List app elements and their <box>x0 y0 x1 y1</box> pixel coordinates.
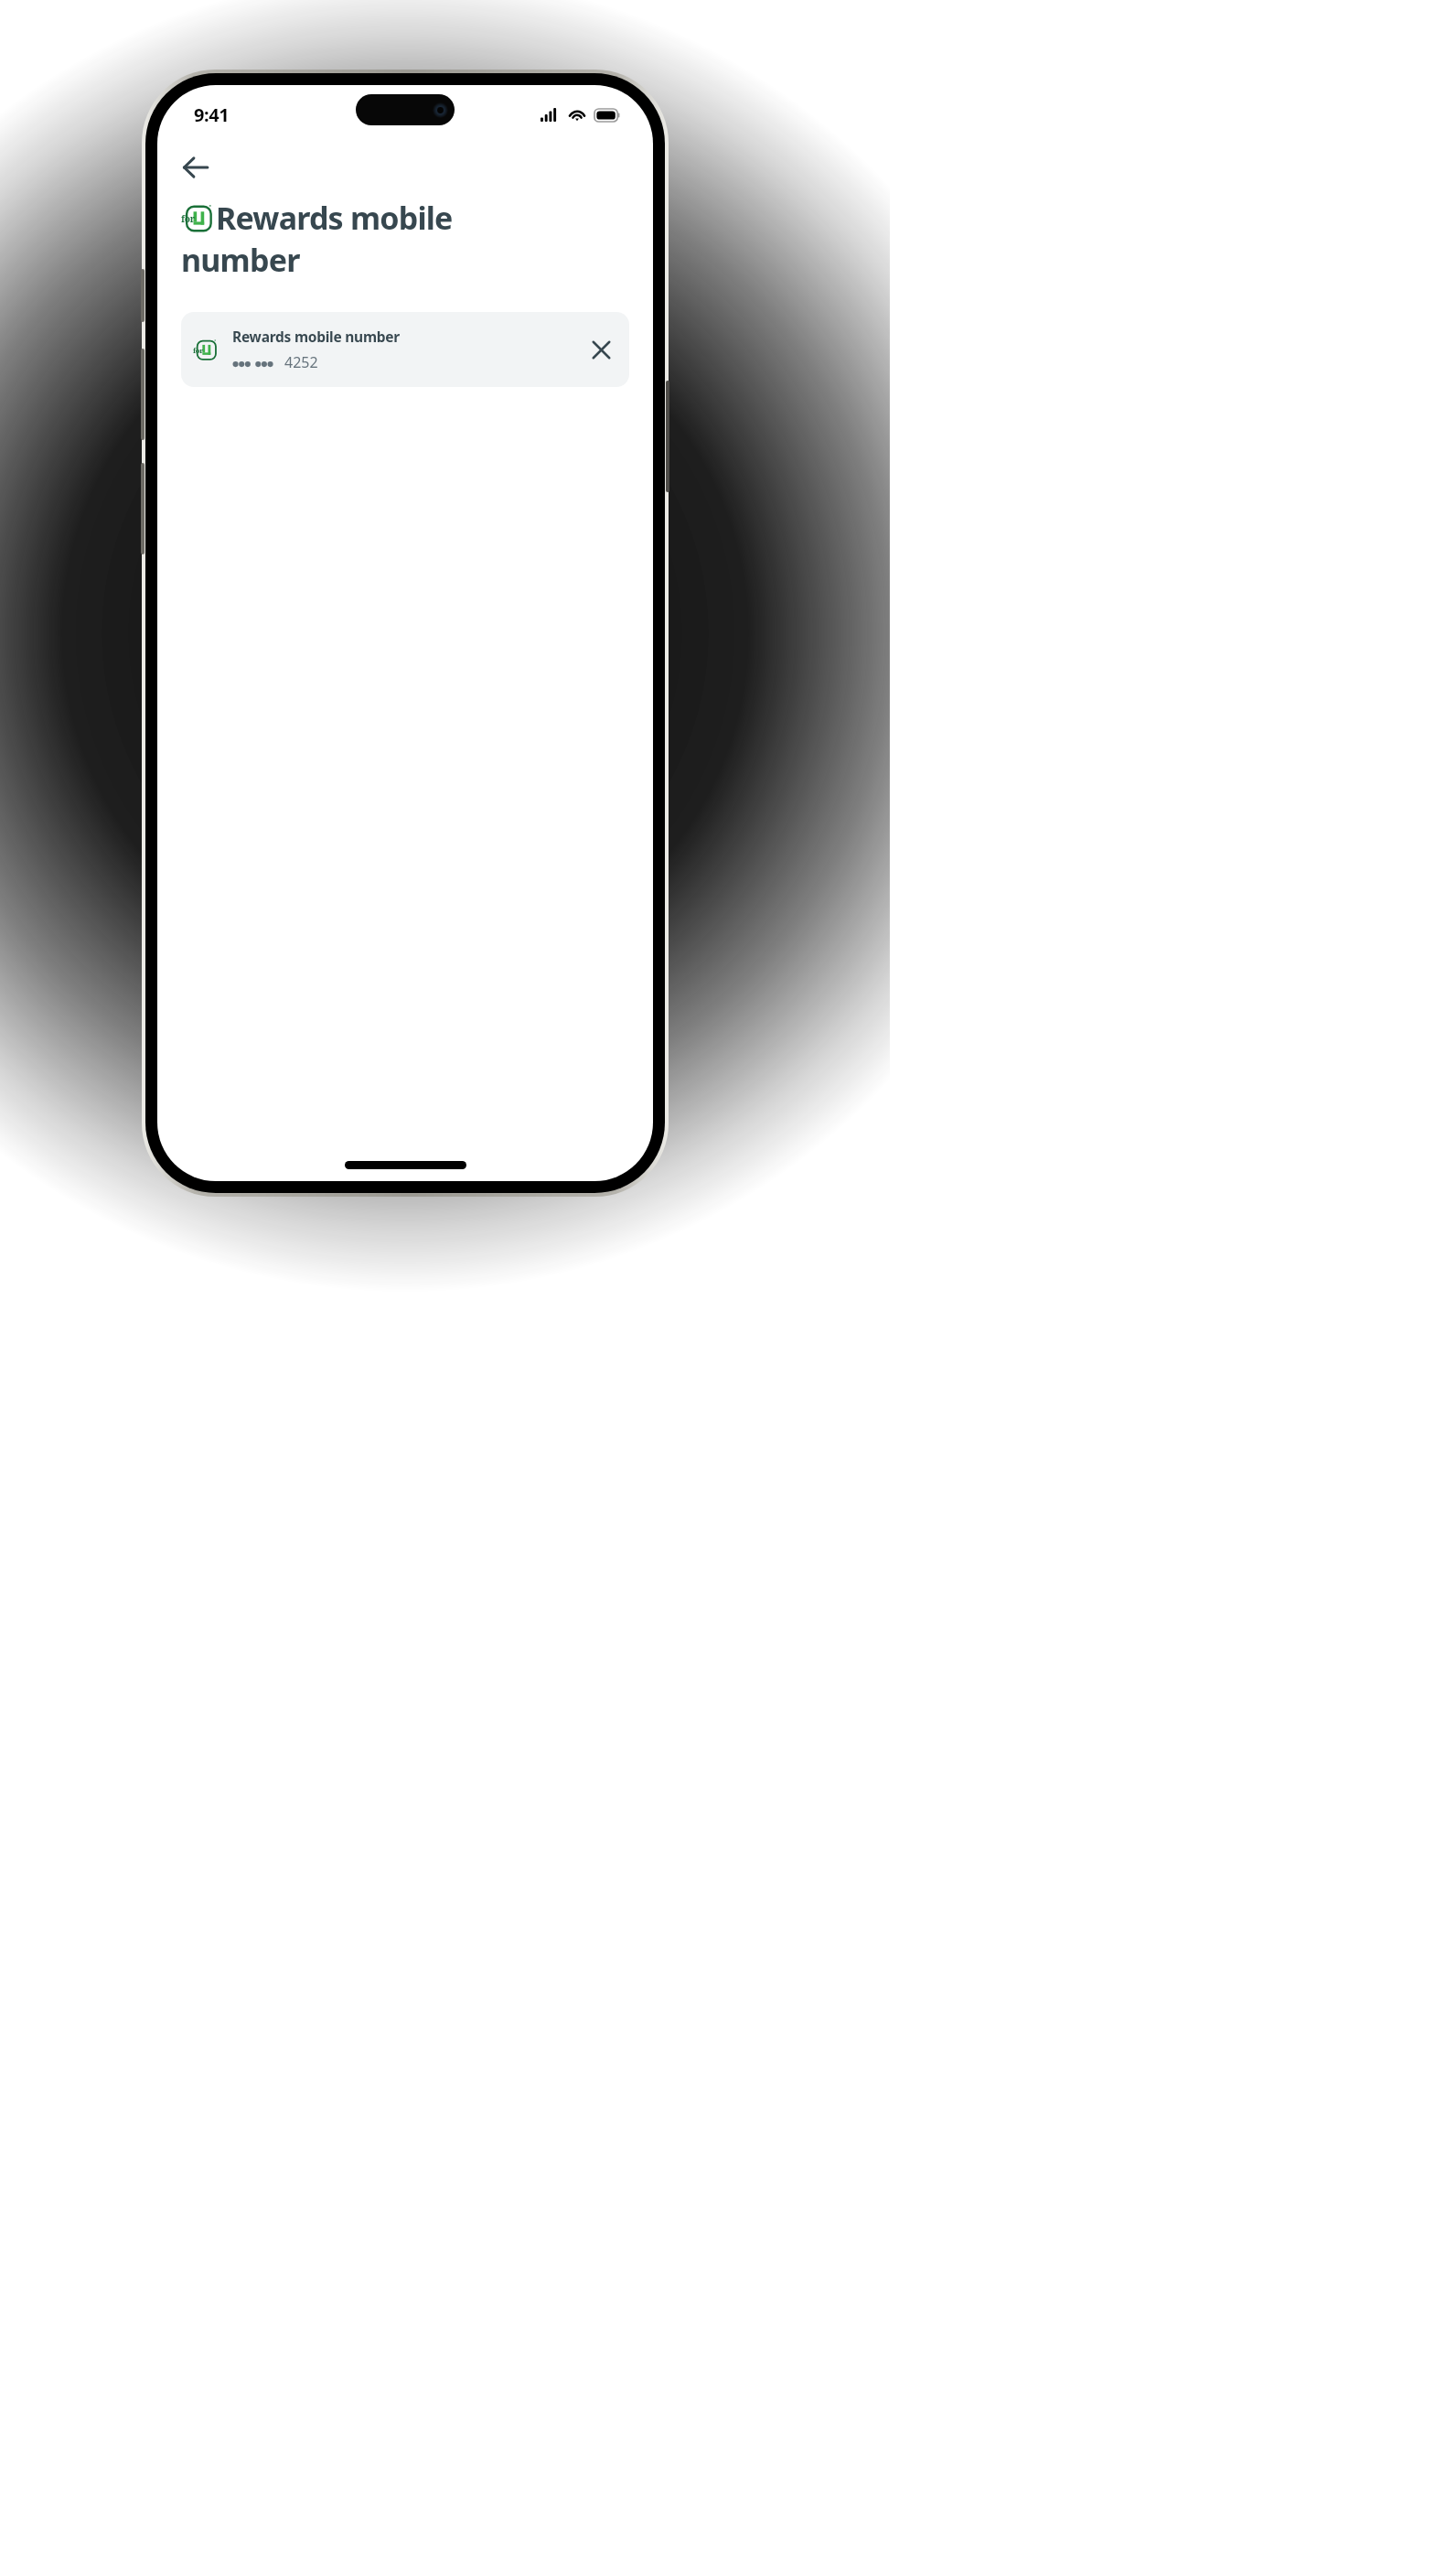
staticText: for <box>193 346 204 356</box>
staticText: number <box>181 239 300 281</box>
button[interactable]: Back <box>170 142 221 193</box>
staticText: Rewards mobile <box>216 197 453 239</box>
button[interactable]: for <box>181 312 629 387</box>
staticText: Rewards mobile number <box>232 327 401 346</box>
staticText: 4252 <box>284 352 318 372</box>
button[interactable]: Remove <box>580 328 622 371</box>
staticText: for <box>181 212 195 225</box>
staticText: 9:41 <box>194 102 230 127</box>
